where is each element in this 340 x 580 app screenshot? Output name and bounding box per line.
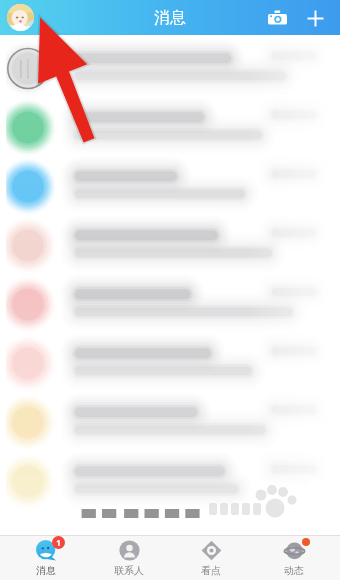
- button[interactable]: 1: [10, 535, 82, 580]
- button[interactable]: Camera: [260, 1, 294, 35]
- staticText: 消息: [36, 564, 56, 577]
- staticText: 联系人: [114, 564, 144, 577]
- button[interactable]: 联系人: [93, 535, 165, 580]
- button[interactable]: 看点: [175, 535, 247, 580]
- staticText: 1: [56, 537, 61, 548]
- button[interactable]: Profile: [7, 4, 34, 31]
- staticText: 看点: [201, 564, 221, 577]
- staticText: 动态: [284, 564, 304, 577]
- button[interactable]: Add: [298, 1, 332, 35]
- button[interactable]: 动态: [258, 535, 330, 580]
- staticText: 消息: [154, 8, 186, 28]
